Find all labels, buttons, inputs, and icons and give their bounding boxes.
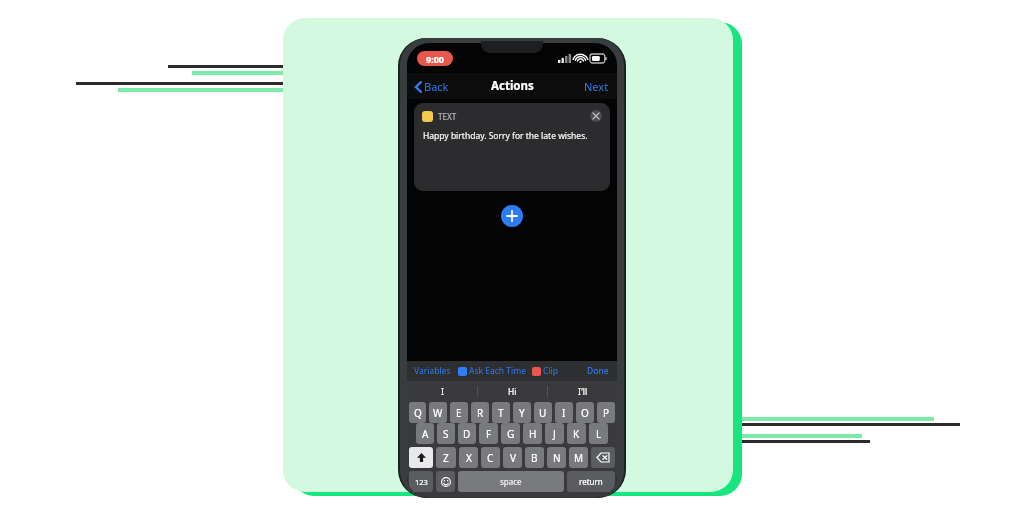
staticText: V: [510, 451, 516, 465]
staticText: R: [477, 406, 484, 420]
staticText: Happy birthday. Sorry for the late wishe…: [423, 130, 588, 142]
staticText: return: [579, 476, 603, 487]
button[interactable]: Next: [582, 76, 611, 97]
staticText: space: [500, 476, 522, 487]
staticText: Actions: [491, 78, 534, 94]
button[interactable]: C: [481, 447, 500, 468]
button[interactable]: D: [458, 423, 476, 444]
button[interactable]: R: [471, 402, 489, 423]
staticText: T: [498, 406, 504, 420]
button[interactable]: J: [545, 423, 564, 444]
button[interactable]: W: [429, 402, 447, 423]
button[interactable]: E: [450, 402, 468, 423]
staticText: I: [562, 406, 566, 420]
staticText: Q: [414, 406, 422, 420]
staticText: L: [596, 427, 602, 441]
staticText: O: [581, 406, 589, 420]
staticText: H: [529, 427, 537, 441]
button[interactable]: M: [569, 447, 588, 468]
staticText: Hi: [508, 386, 517, 398]
button[interactable]: B: [525, 447, 544, 468]
button[interactable]: I'll: [548, 381, 617, 402]
button[interactable]: Z: [436, 447, 456, 468]
staticText: Ask Each Time: [469, 365, 526, 377]
button[interactable]: L: [589, 423, 608, 444]
staticText: F: [486, 427, 492, 441]
button[interactable]: P: [597, 402, 615, 423]
button[interactable]: Ask Each Time: [458, 365, 526, 377]
button[interactable]: return: [567, 471, 615, 492]
button[interactable]: I: [407, 381, 477, 402]
button[interactable]: Add action: [501, 205, 523, 227]
staticText: I: [441, 386, 444, 398]
button[interactable]: Y: [513, 402, 531, 423]
button[interactable]: Clip: [532, 365, 558, 377]
button[interactable]: I: [555, 402, 573, 423]
button[interactable]: Shift: [409, 447, 433, 468]
button[interactable]: A: [416, 423, 434, 444]
button[interactable]: U: [534, 402, 552, 423]
staticText: X: [466, 451, 472, 465]
button[interactable]: TEXT: [414, 103, 610, 191]
staticText: Y: [519, 406, 525, 420]
button[interactable]: S: [437, 423, 455, 444]
staticText: E: [456, 406, 462, 420]
staticText: TEXT: [438, 111, 457, 122]
button[interactable]: V: [503, 447, 522, 468]
staticText: I'll: [578, 386, 588, 398]
staticText: U: [539, 406, 547, 420]
staticText: K: [573, 427, 580, 441]
button[interactable]: Backspace: [591, 447, 615, 468]
button[interactable]: 123: [409, 471, 433, 492]
button[interactable]: Done: [587, 365, 617, 377]
staticText: S: [443, 427, 449, 441]
button[interactable]: Back: [413, 76, 451, 97]
button[interactable]: T: [492, 402, 510, 423]
staticText: B: [531, 451, 538, 465]
button[interactable]: X: [459, 447, 478, 468]
button[interactable]: F: [479, 423, 498, 444]
button[interactable]: O: [576, 402, 594, 423]
staticText: P: [603, 406, 610, 420]
button[interactable]: G: [501, 423, 520, 444]
staticText: G: [507, 427, 515, 441]
staticText: 9:00: [426, 53, 444, 65]
button[interactable]: Remove action: [590, 110, 602, 122]
button[interactable]: N: [547, 447, 566, 468]
staticText: W: [433, 406, 443, 420]
button[interactable]: Variables: [414, 365, 451, 377]
button[interactable]: Q: [409, 402, 426, 423]
button[interactable]: Emoji: [436, 471, 455, 492]
staticText: J: [553, 427, 556, 441]
staticText: M: [574, 451, 584, 465]
button[interactable]: space: [458, 471, 564, 492]
button[interactable]: H: [523, 423, 542, 444]
staticText: 123: [415, 477, 428, 487]
staticText: Z: [443, 451, 449, 465]
staticText: D: [463, 427, 471, 441]
button[interactable]: Hi: [478, 381, 547, 402]
staticText: Clip: [543, 365, 558, 377]
staticText: N: [553, 451, 561, 465]
staticText: Back: [424, 79, 449, 94]
button[interactable]: K: [567, 423, 586, 444]
staticText: C: [487, 451, 494, 465]
staticText: A: [422, 427, 429, 441]
